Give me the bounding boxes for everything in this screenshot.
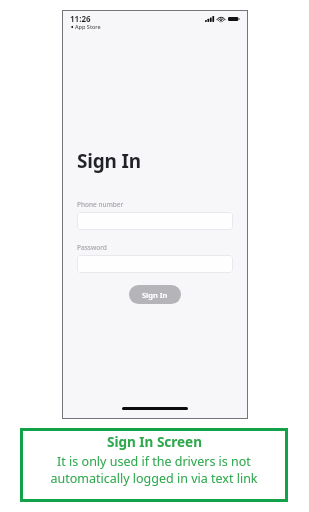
button[interactable]: Sign In (129, 285, 181, 304)
staticText: Phone number (77, 200, 124, 209)
staticText: App Store (75, 23, 101, 30)
staticText: 11:26 (70, 13, 91, 24)
button[interactable]: Phone number field (77, 212, 233, 230)
staticText: Sign In Screen (107, 433, 202, 451)
staticText: Sign In (142, 290, 168, 300)
button[interactable]: Password field (77, 255, 233, 273)
staticText: Sign In (77, 148, 141, 174)
staticText: Password (77, 243, 107, 252)
staticText: It is only used if the drivers is not au… (50, 453, 258, 486)
